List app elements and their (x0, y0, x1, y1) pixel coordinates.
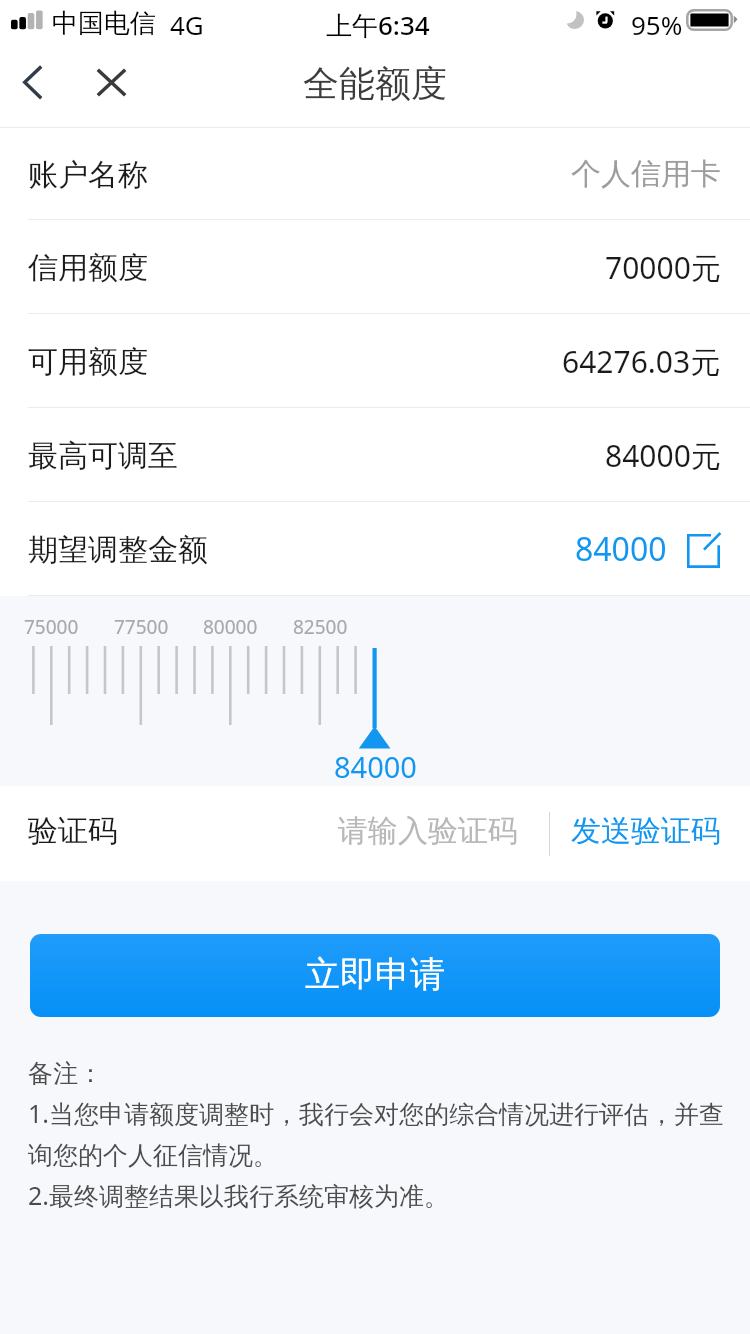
staticText: 备注： 1.当您申请额度调整时，我行会对您的综合情况进行评估，并查询您的个人征信… (28, 1058, 736, 1213)
staticText: 中国电信 (52, 7, 156, 40)
button[interactable]: 账户名称 (0, 128, 750, 220)
button[interactable]: 请输入验证码 (180, 786, 545, 881)
staticText: 信用额度 (28, 249, 148, 287)
staticText: 77500 (114, 614, 169, 640)
staticText: 75000 (24, 614, 79, 640)
button[interactable]: 立即申请 (30, 934, 720, 1017)
staticText: 验证码 (28, 812, 118, 850)
staticText: 95% (631, 7, 683, 42)
staticText: 立即申请 (305, 952, 445, 996)
staticText: 84000 (334, 747, 417, 786)
staticText: 个人信用卡 (571, 155, 721, 193)
staticText: 期望调整金额 (28, 531, 208, 569)
button[interactable]: Back (0, 48, 64, 120)
button[interactable]: 信用额度 (0, 220, 750, 314)
staticText: 发送验证码 (571, 812, 721, 850)
button[interactable]: 发送验证码 (554, 786, 750, 881)
button[interactable]: 期望调整金额 (0, 502, 750, 596)
staticText: 80000 (203, 614, 258, 640)
staticText: 上午6:34 (326, 7, 430, 43)
staticText: 64276.03元 (562, 341, 721, 382)
staticText: 账户名称 (28, 156, 148, 194)
staticText: 4G (170, 7, 204, 42)
staticText: 全能额度 (303, 61, 447, 106)
button[interactable]: Close (78, 48, 146, 120)
staticText: 请输入验证码 (338, 812, 518, 850)
staticText: 70000元 (605, 247, 721, 288)
staticText: 可用额度 (28, 343, 148, 381)
staticText: 84000元 (605, 435, 721, 476)
button[interactable]: 可用额度 (0, 314, 750, 408)
staticText: 84000 (575, 527, 667, 571)
staticText: 82500 (293, 614, 348, 640)
button[interactable]: 最高可调至 (0, 408, 750, 502)
staticText: 最高可调至 (28, 437, 178, 475)
